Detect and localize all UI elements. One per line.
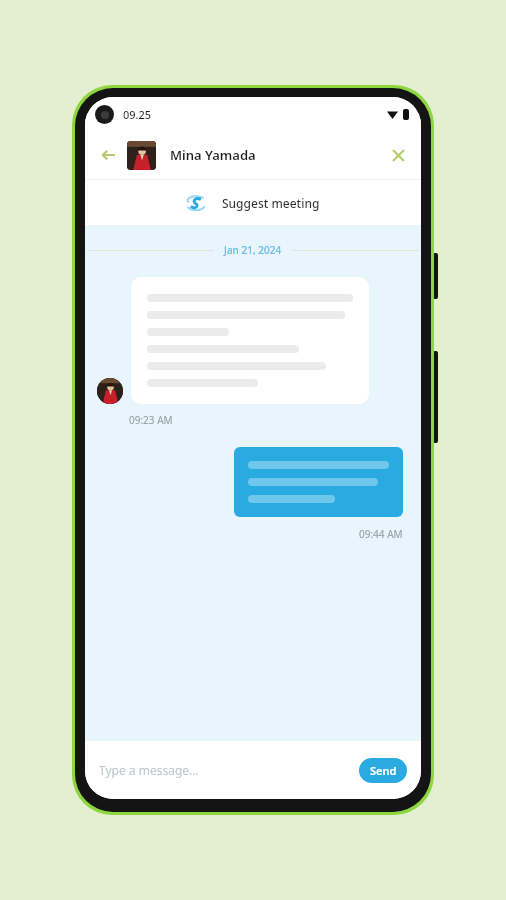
button[interactable]: Send xyxy=(359,758,407,783)
staticText: Mina Yamada xyxy=(170,146,385,164)
button[interactable]: Close xyxy=(385,142,411,168)
staticText: Suggest meeting xyxy=(222,195,320,211)
button[interactable]: Sender avatar xyxy=(97,378,123,404)
button[interactable] xyxy=(131,277,369,404)
button[interactable]: Type a message... xyxy=(99,741,359,799)
button[interactable]: Back xyxy=(95,142,121,168)
button[interactable] xyxy=(234,447,403,517)
staticText: 09.25 xyxy=(123,107,152,122)
button[interactable]: Profile photo xyxy=(127,141,156,170)
staticText: Type a message... xyxy=(99,762,199,778)
staticText: Jan 21, 2024 xyxy=(224,243,282,257)
staticText: Send xyxy=(370,763,397,778)
staticText: 09:23 AM xyxy=(129,413,173,427)
button[interactable]: Suggest meeting xyxy=(85,180,421,225)
staticText: 09:44 AM xyxy=(359,527,403,541)
